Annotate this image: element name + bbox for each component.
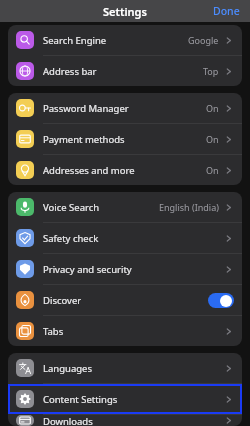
button[interactable]: Voice Search [8, 192, 242, 222]
button[interactable]: Content Settings [8, 384, 242, 414]
staticText: On [206, 164, 219, 176]
button[interactable]: Downloads [8, 415, 242, 426]
staticText: Google [188, 34, 219, 46]
staticText: Tabs [43, 325, 64, 338]
staticText: Password Manager [43, 102, 129, 115]
staticText: Privacy and security [43, 263, 132, 276]
button[interactable]: Discover [8, 285, 242, 315]
button[interactable]: Languages [8, 353, 242, 383]
button[interactable]: Done [203, 1, 250, 21]
staticText: Payment methods [43, 133, 125, 146]
button[interactable]: Payment methods [8, 124, 242, 154]
staticText: Search Engine [43, 34, 107, 47]
button[interactable]: Privacy and security [8, 254, 242, 284]
staticText: Voice Search [43, 201, 100, 214]
button[interactable]: Safety check [8, 223, 242, 253]
staticText: On [206, 133, 219, 145]
staticText: Discover [43, 294, 82, 307]
button[interactable]: Addresses and more [8, 155, 242, 185]
staticText: Content Settings [43, 393, 118, 406]
staticText: Address bar [43, 65, 97, 78]
button[interactable]: Password Manager [8, 93, 242, 123]
staticText: Done [213, 4, 240, 18]
staticText: On [206, 102, 219, 114]
staticText: Top [203, 65, 219, 77]
button[interactable]: Search Engine [8, 25, 242, 55]
staticText: Settings [103, 4, 147, 19]
button[interactable]: Toggle Discover [208, 293, 234, 308]
button[interactable]: Tabs [8, 316, 242, 346]
staticText: English (India) [159, 201, 219, 213]
staticText: Downloads [43, 415, 93, 426]
staticText: Addresses and more [43, 164, 135, 177]
staticText: Languages [43, 362, 92, 375]
staticText: Safety check [43, 232, 99, 245]
button[interactable]: Address bar [8, 56, 242, 86]
